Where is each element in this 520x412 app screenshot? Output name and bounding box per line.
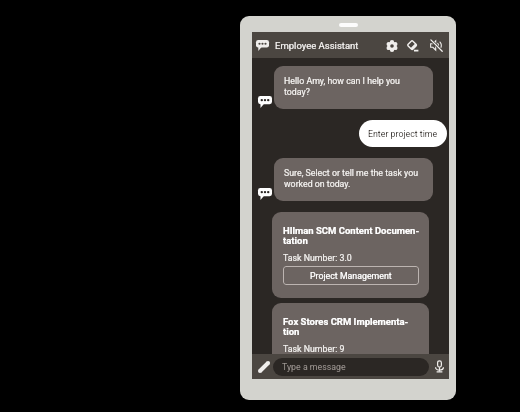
staticText: Task Number: 9: [283, 344, 345, 354]
staticText: Sure, Select or tell me the task you wor…: [284, 168, 420, 189]
button[interactable]: Mute: [427, 36, 446, 55]
staticText: Fox Stores CRM Implementa- tion: [283, 316, 409, 338]
button[interactable]: HIlman SCM Content Documen- tation: [272, 212, 429, 298]
staticText: HIlman SCM Content Documen- tation: [283, 225, 419, 247]
staticText: Hello Amy, how can I help you today?: [284, 76, 420, 97]
staticText: Employee Assistant: [275, 40, 359, 51]
button[interactable]: Sure, Select or tell me the task you wor…: [274, 158, 433, 201]
staticText: Project Management: [310, 271, 392, 281]
button[interactable]: Enter project time: [359, 120, 447, 147]
button[interactable]: Settings: [382, 36, 401, 55]
button[interactable]: Voice input: [431, 358, 448, 375]
staticText: Task Number: 3.0: [283, 253, 352, 263]
staticText: Enter project time: [368, 129, 438, 139]
button[interactable]: Project Management: [283, 266, 419, 285]
button[interactable]: Clear chat: [403, 36, 422, 55]
button[interactable]: Edit: [255, 358, 272, 375]
staticText: Type a message: [282, 362, 346, 372]
button[interactable]: Type a message: [273, 358, 429, 376]
button[interactable]: Fox Stores CRM Implementa- tion: [272, 303, 429, 354]
button[interactable]: Hello Amy, how can I help you today?: [274, 66, 433, 109]
